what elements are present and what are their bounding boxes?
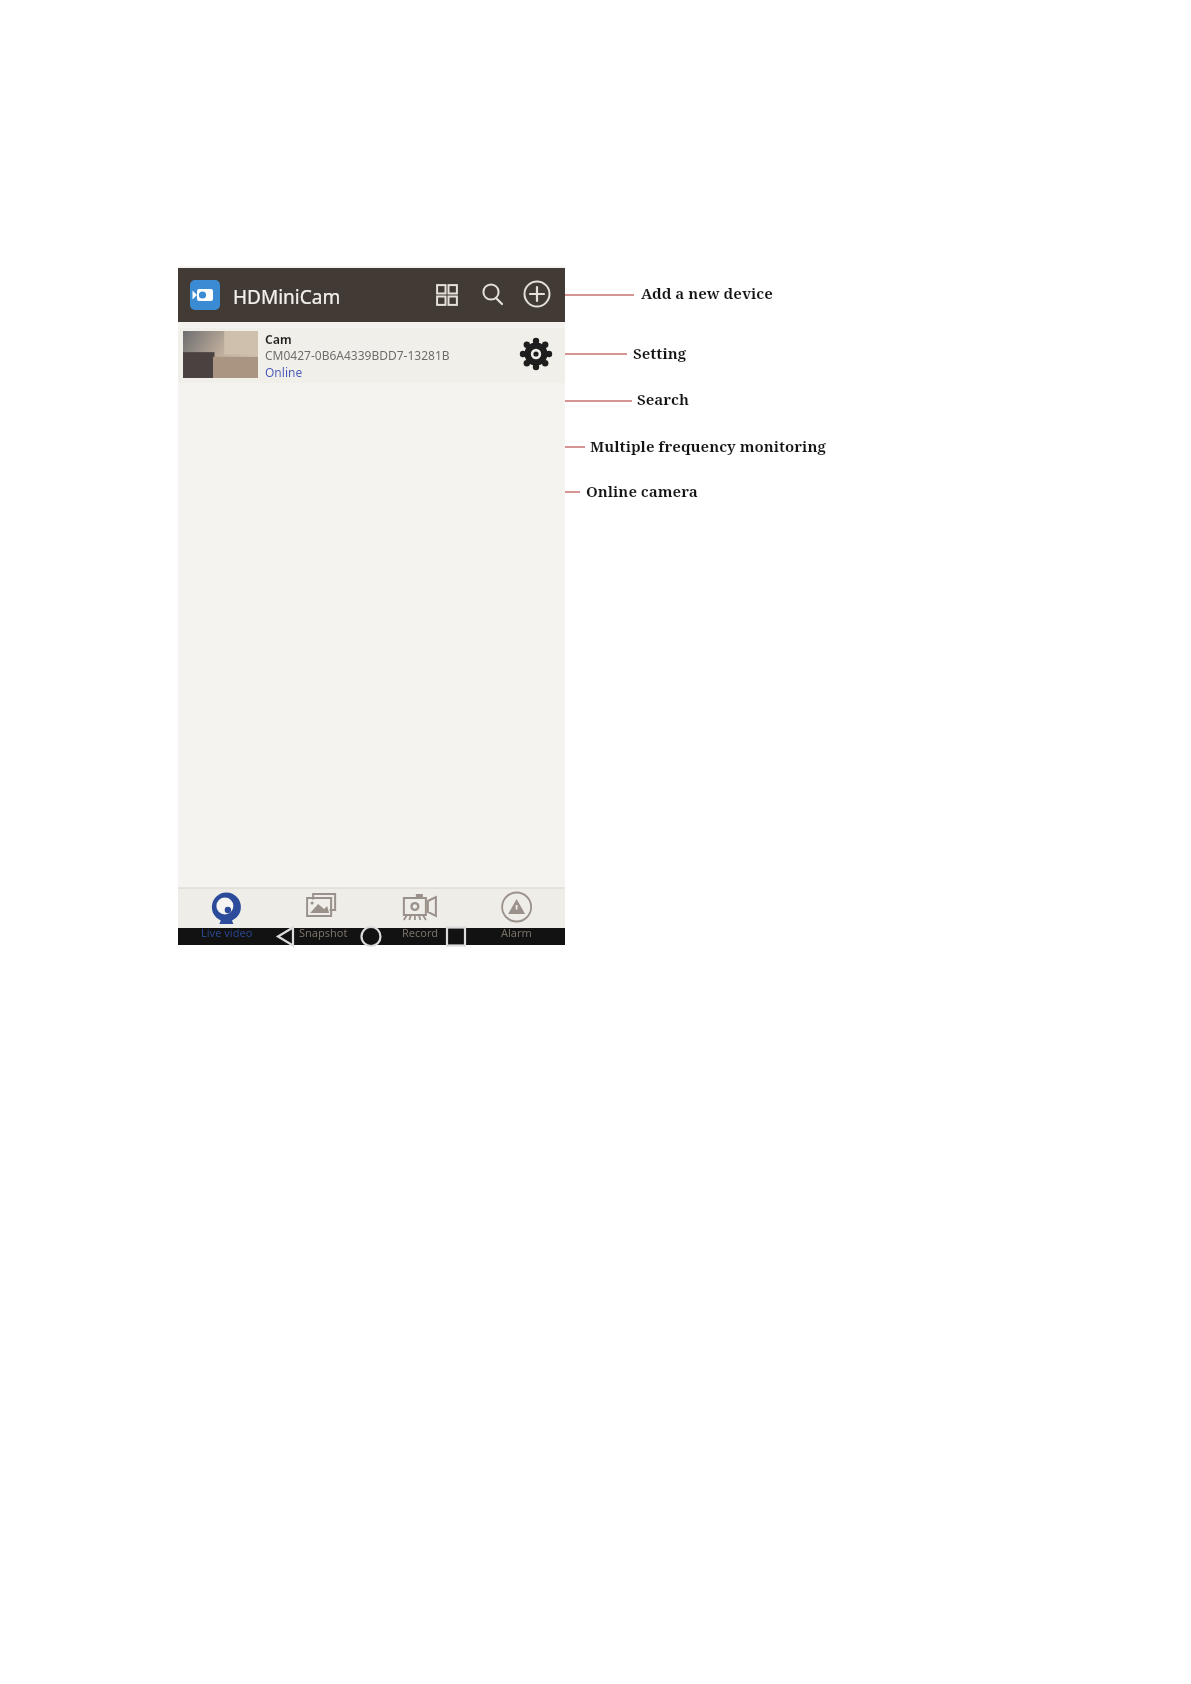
staticText: Add a new device	[641, 283, 773, 303]
staticText: Cam	[265, 331, 292, 347]
staticText: Alarm	[501, 925, 532, 940]
staticText: CM0427-0B6A4339BDD7-13281B	[265, 347, 450, 363]
staticText: Multiple frequency monitoring	[590, 436, 826, 456]
button[interactable]: Snapshot	[275, 888, 372, 945]
button[interactable]: Search	[477, 275, 511, 313]
button[interactable]: Live video	[178, 888, 275, 945]
button[interactable]: Recents	[437, 945, 477, 980]
button[interactable]: Home	[352, 945, 392, 980]
button[interactable]: Multiple frequency monitoring	[431, 275, 467, 313]
button[interactable]: Alarm	[468, 888, 565, 945]
staticText: Snapshot	[299, 925, 348, 940]
staticText: Online	[265, 364, 303, 380]
staticText: Record	[402, 925, 439, 940]
button[interactable]: Add a new device	[519, 275, 557, 313]
staticText: Setting	[633, 343, 687, 363]
button[interactable]: Record	[372, 888, 469, 945]
staticText: HDMiniCam	[233, 284, 341, 310]
staticText: Search	[637, 389, 690, 409]
button[interactable]	[178, 328, 565, 383]
button[interactable]: Setting	[521, 339, 552, 370]
staticText: Online camera	[586, 481, 698, 501]
staticText: Live video	[201, 925, 253, 940]
